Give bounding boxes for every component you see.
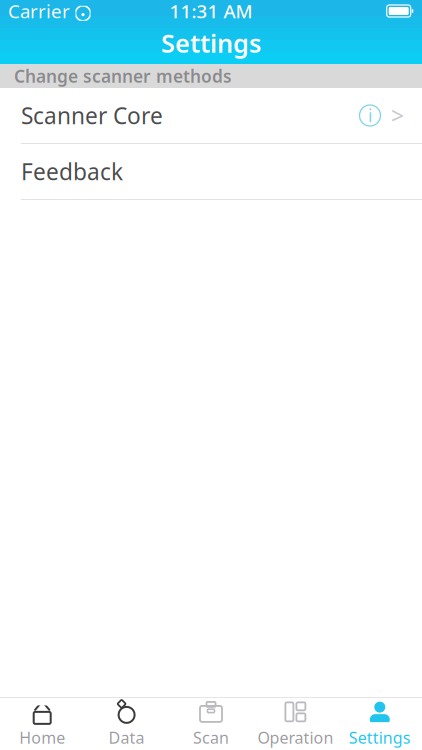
- button[interactable]: Home: [0, 699, 84, 749]
- staticText: Data: [109, 727, 145, 748]
- staticText: Scanner Core: [21, 100, 163, 130]
- staticText: i: [368, 104, 372, 127]
- button[interactable]: Scan: [169, 699, 253, 749]
- staticText: Scan: [193, 727, 229, 748]
- button[interactable]: Scanner Core: [0, 88, 422, 144]
- button[interactable]: Operation: [253, 699, 338, 749]
- staticText: Carrier: [8, 0, 70, 23]
- staticText: Home: [19, 727, 65, 748]
- button[interactable]: Settings: [338, 699, 422, 749]
- staticText: Settings: [349, 727, 411, 748]
- staticText: Feedback: [21, 156, 123, 186]
- staticText: 11:31 AM: [169, 0, 252, 23]
- staticText: Change scanner methods: [14, 64, 232, 87]
- button[interactable]: Data: [84, 699, 169, 749]
- staticText: Operation: [257, 727, 333, 748]
- staticText: >: [391, 100, 404, 130]
- staticText: Settings: [161, 26, 261, 60]
- button[interactable]: Feedback: [0, 144, 422, 200]
